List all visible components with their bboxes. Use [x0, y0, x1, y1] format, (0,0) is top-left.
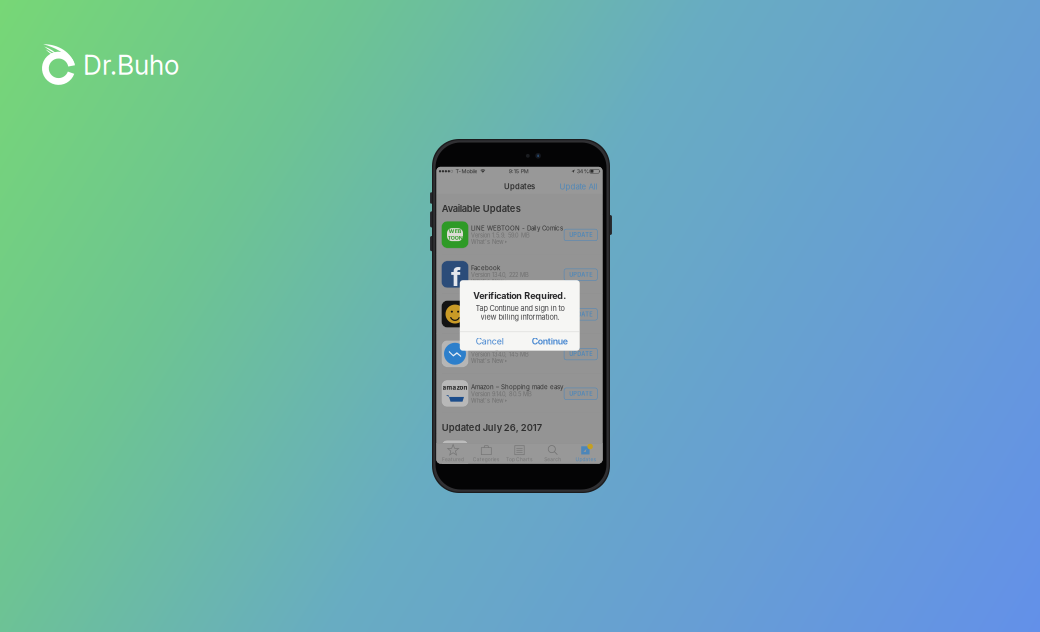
button[interactable]: Search — [536, 443, 569, 463]
staticText: Version 134.0, 222 MB — [471, 272, 529, 278]
staticText: Version 9.14.0, 80.5 MB — [471, 391, 532, 398]
staticText: UPDATE — [569, 271, 592, 278]
button[interactable]: UPDATE — [564, 448, 597, 460]
staticText: What's New — [471, 457, 504, 464]
button[interactable]: UPDATE — [564, 308, 597, 320]
staticText: Version 2.1.0, 48.7 MB — [471, 311, 529, 318]
staticText: UPDATE — [569, 351, 592, 357]
staticText: Amazon – Shopping made easy — [471, 383, 563, 391]
button[interactable]: UPDATE — [564, 229, 597, 241]
staticText: 9:15 PM — [509, 168, 529, 174]
staticText: UPDATE — [569, 390, 592, 397]
staticText: Updates — [504, 182, 535, 191]
staticText: Facebook — [471, 264, 500, 272]
button[interactable]: Categories — [470, 443, 503, 463]
button[interactable]: Updates — [569, 443, 602, 463]
staticText: UPDATE — [569, 311, 592, 318]
staticText: What's New — [471, 318, 504, 325]
staticText: UPDATE — [569, 232, 592, 238]
button[interactable]: UPDATE — [564, 269, 597, 280]
button[interactable]: UPDATE — [564, 388, 597, 399]
staticText: f — [451, 261, 461, 292]
button[interactable]: Top Charts — [503, 443, 536, 463]
staticText: Emoji Keyboard — [471, 304, 515, 311]
staticText: UPDATE — [569, 451, 592, 457]
button[interactable]: UPDATE — [564, 348, 597, 360]
staticText: What's New — [471, 238, 504, 245]
staticText: Featured — [442, 457, 464, 462]
staticText: 34% — [577, 168, 589, 174]
button[interactable]: Cancel — [460, 332, 520, 351]
staticText: Version 134.0, 145 MB — [471, 351, 529, 358]
staticText: What's New — [471, 357, 504, 364]
button[interactable]: Featured — [436, 443, 470, 463]
button[interactable]: Messenger — [436, 334, 602, 374]
staticText: LINE WEBTOON - Daily Comics — [471, 224, 563, 232]
staticText: Version 1.5.9, 59.0 MB — [471, 232, 530, 239]
staticText: WEB TOON — [447, 228, 462, 241]
staticText: Google Docs — [471, 443, 510, 451]
staticText: Version 1.2017.30, 104 MB — [471, 451, 540, 458]
staticText: Updates — [575, 457, 596, 462]
staticText: Categories — [473, 457, 500, 462]
staticText: Verification Required. — [473, 290, 566, 301]
staticText: Update All — [559, 182, 597, 191]
staticText: What's New — [471, 397, 504, 404]
staticText: Continue — [532, 336, 568, 347]
staticText: Updated July 26, 2017 — [442, 422, 542, 433]
button[interactable]: f — [436, 254, 602, 294]
staticText: What's New — [471, 278, 504, 285]
staticText: Cancel — [476, 336, 504, 347]
staticText: Top Charts — [506, 457, 533, 462]
button[interactable]: Google Docs — [436, 434, 602, 473]
button[interactable]: WEB TOON — [436, 215, 602, 254]
button[interactable]: Emoji Keyboard — [436, 294, 602, 334]
staticText: amazon — [442, 384, 467, 391]
staticText: Messenger — [471, 344, 505, 351]
staticText: Dr.Buho — [83, 49, 179, 81]
button[interactable]: Continue — [520, 332, 580, 351]
button[interactable]: Update All — [556, 180, 600, 193]
staticText: T-Mobile — [455, 168, 477, 174]
staticText: Available Updates — [442, 203, 521, 214]
staticText: Search — [544, 457, 561, 462]
button[interactable]: amazon — [436, 374, 602, 413]
staticText: Tap Continue and sign in to view billing… — [475, 304, 564, 321]
